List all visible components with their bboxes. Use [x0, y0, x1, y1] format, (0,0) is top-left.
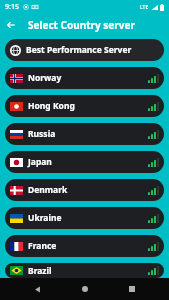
staticText: LTE [140, 4, 149, 11]
button[interactable]: France [5, 235, 164, 257]
staticText: Hong Kong [28, 100, 75, 112]
button[interactable]: Recents [121, 278, 143, 300]
staticText: Ukraine [28, 212, 62, 224]
staticText: 9:15 [5, 2, 19, 12]
staticText: Select Country server [28, 18, 135, 32]
staticText: Denmark [28, 184, 68, 196]
button[interactable]: Home [74, 278, 96, 300]
staticText: France [28, 240, 57, 252]
button[interactable]: Best Performance Server [5, 39, 164, 61]
staticText: Russia [28, 128, 56, 140]
button[interactable]: Hong Kong [5, 95, 164, 117]
button[interactable]: Back [0, 14, 22, 36]
button[interactable]: Russia [5, 123, 164, 145]
button[interactable]: Denmark [5, 179, 164, 201]
staticText: Norway [28, 72, 62, 84]
button[interactable]: Back [26, 278, 48, 300]
staticText: Brazil [28, 265, 52, 277]
staticText: Best Performance Server [26, 44, 132, 56]
button[interactable]: Japan [5, 151, 164, 173]
staticText: Japan [28, 156, 52, 168]
button[interactable]: Ukraine [5, 207, 164, 229]
button[interactable]: Norway [5, 67, 164, 89]
button[interactable]: Brazil [5, 263, 164, 278]
